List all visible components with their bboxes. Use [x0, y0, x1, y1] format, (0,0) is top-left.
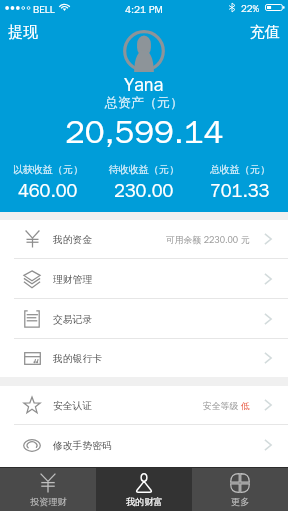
staticText: 20,599.14 — [65, 111, 224, 153]
staticText: 低 — [241, 401, 250, 412]
staticText: 4:21 PM — [125, 3, 163, 16]
staticText: 701.33 — [210, 180, 270, 203]
staticText: 投资理财 — [30, 496, 67, 508]
staticText: 22% — [241, 3, 260, 15]
button[interactable]: 理财管理 — [0, 259, 288, 298]
button[interactable]: 我的银行卡 — [0, 339, 288, 377]
button[interactable]: 更多 — [192, 467, 288, 511]
button[interactable]: 交易记录 — [0, 299, 288, 338]
staticText: 安全认证 — [53, 400, 93, 412]
button[interactable]: 安全认证 — [0, 386, 288, 424]
staticText: 总资产（元） — [105, 94, 183, 110]
staticText: 更多 — [231, 496, 250, 508]
staticText: 安全等级 — [203, 401, 241, 412]
button[interactable]: 修改手势密码 — [0, 425, 288, 464]
staticText: 交易记录 — [53, 314, 93, 326]
staticText: 修改手势密码 — [53, 440, 112, 452]
button[interactable]: 充值 — [246, 20, 284, 45]
staticText: 以获收益（元） — [13, 163, 83, 176]
staticText: BELL — [33, 3, 55, 16]
button[interactable]: 我的财富 — [96, 467, 192, 511]
staticText: 我的资金 — [53, 234, 93, 246]
staticText: 我的财富 — [126, 496, 163, 508]
staticText: 我的银行卡 — [53, 353, 102, 365]
staticText: Yana — [124, 74, 164, 97]
staticText: 充值 — [250, 23, 280, 42]
button[interactable]: 提现 — [4, 20, 42, 45]
staticText: 可用余额 2230.00 元 — [166, 235, 250, 246]
staticText: 460.00 — [18, 180, 78, 203]
staticText: 提现 — [8, 23, 38, 42]
staticText: 理财管理 — [53, 274, 93, 286]
button[interactable]: 我的资金 — [0, 220, 288, 258]
staticText: 总收益（元） — [210, 163, 270, 176]
staticText: 待收收益（元） — [109, 163, 179, 176]
button[interactable]: 投资理财 — [0, 467, 96, 511]
staticText: 230.00 — [114, 180, 174, 203]
